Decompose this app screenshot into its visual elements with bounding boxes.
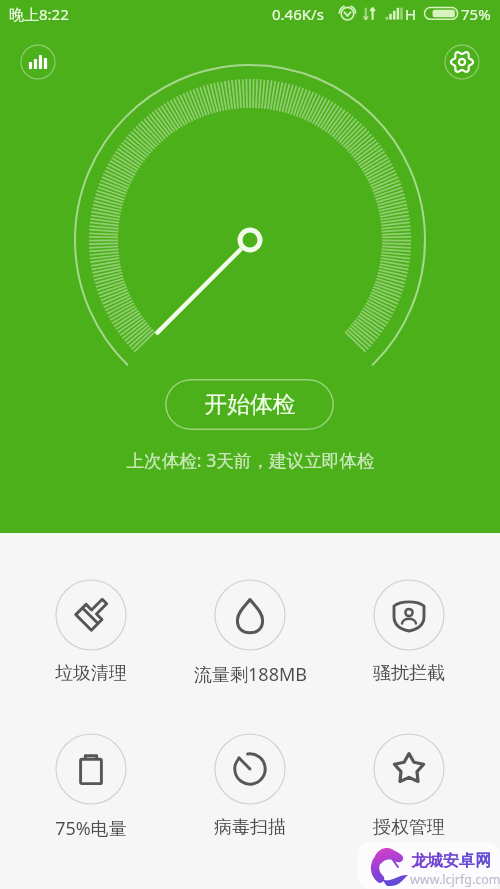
- staticText: 晚上8:22: [9, 4, 69, 24]
- button[interactable]: Statistics: [20, 44, 56, 80]
- staticText: 0.46K/s: [272, 4, 324, 24]
- staticText: H: [405, 4, 417, 24]
- staticText: 75%: [461, 4, 491, 24]
- button[interactable]: 流量剩188MB: [180, 580, 320, 690]
- staticText: 垃圾清理: [55, 662, 127, 685]
- button[interactable]: 授权管理: [339, 734, 479, 844]
- staticText: 病毒扫描: [214, 816, 286, 839]
- staticText: 骚扰拦截: [373, 662, 445, 685]
- button[interactable]: 开始体检: [165, 379, 334, 430]
- staticText: www.lcjrfg.com: [410, 871, 500, 888]
- button[interactable]: 垃圾清理: [21, 580, 161, 690]
- button[interactable]: 75%电量: [21, 734, 161, 844]
- staticText: 流量剩188MB: [194, 662, 307, 687]
- staticText: 开始体检: [204, 390, 296, 419]
- button[interactable]: Settings: [444, 44, 480, 80]
- staticText: 上次体检: 3天前，建议立即体检: [126, 448, 375, 472]
- staticText: 龙城安卓网: [411, 851, 491, 871]
- staticText: 授权管理: [373, 816, 445, 839]
- button[interactable]: 骚扰拦截: [339, 580, 479, 690]
- button[interactable]: 病毒扫描: [180, 734, 320, 844]
- staticText: 75%电量: [55, 816, 127, 841]
